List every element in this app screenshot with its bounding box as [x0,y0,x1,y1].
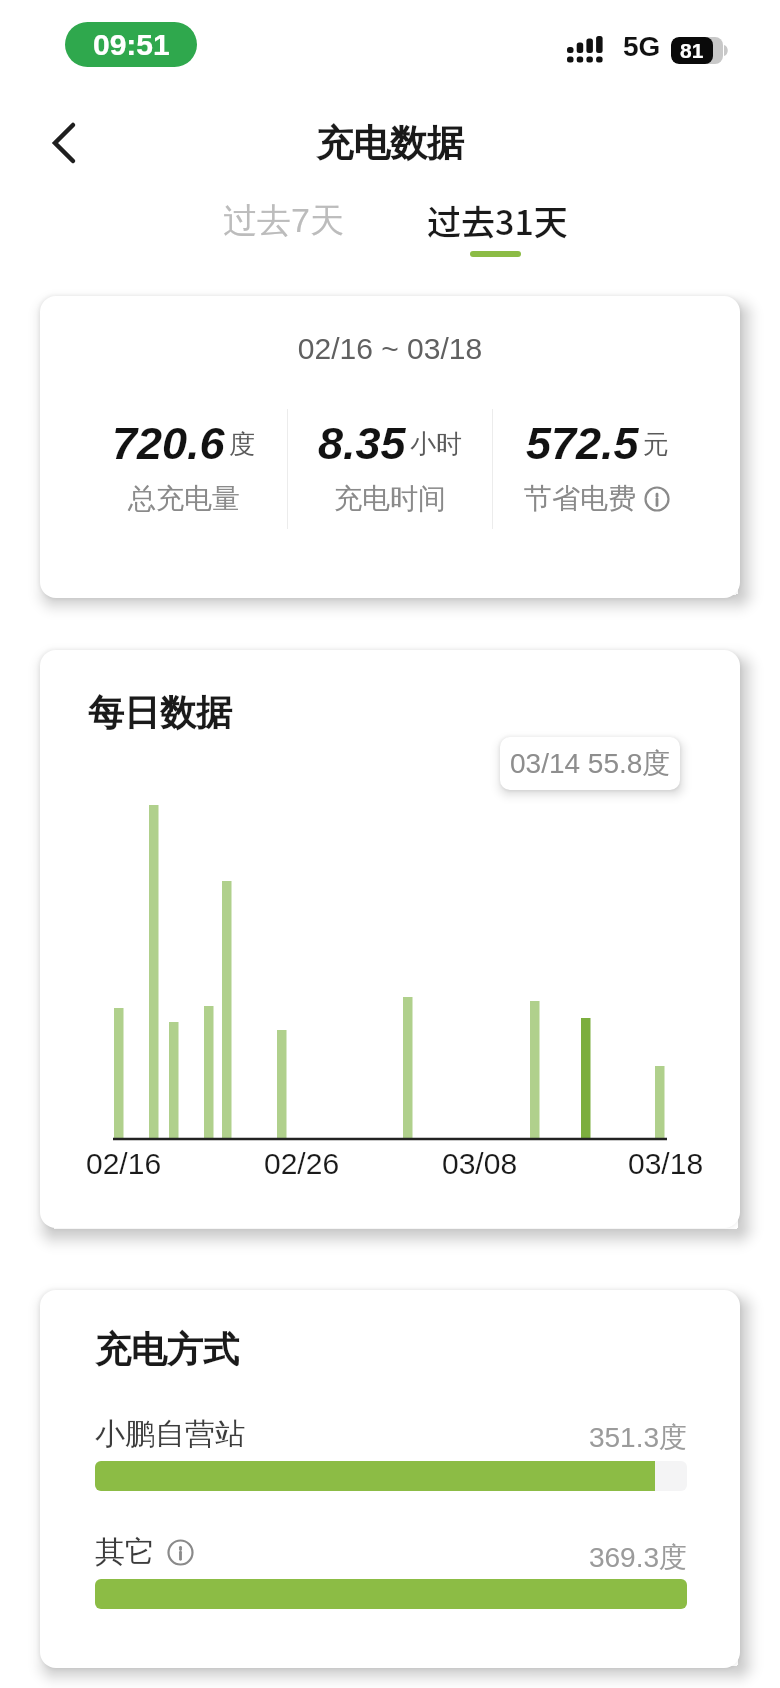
button[interactable]: 09:51 [65,22,197,67]
staticText: 元 [643,428,669,461]
staticText: 02/16 [86,1147,162,1181]
staticText: 5G [623,31,661,62]
staticText: 720.6 [112,418,225,468]
staticText: 8.35 [318,418,406,468]
button[interactable]: 过去31天 [425,196,569,242]
staticText: 81 [680,39,704,62]
staticText: 总充电量 [128,481,240,516]
staticText: 每日数据 [88,690,232,735]
staticText: 03/14 55.8度 [510,746,671,781]
staticText: 充电数据 [316,120,464,167]
staticText: 09:51 [93,28,170,62]
staticText: 度 [229,428,255,461]
staticText: 充电方式 [95,1327,239,1372]
staticText: 节省电费 [524,481,636,516]
staticText: 小时 [410,428,462,461]
button[interactable] [40,115,88,171]
staticText: 03/18 [628,1147,704,1181]
staticText: 02/16 ~ 03/18 [40,332,740,366]
staticText: 369.3度 [40,1540,687,1575]
staticText: 02/26 [264,1147,340,1181]
staticText: 过去31天 [427,196,568,242]
staticText: 过去7天 [223,199,344,242]
staticText: 其它 [95,1533,155,1571]
staticText: 03/08 [442,1147,518,1181]
staticText: 351.3度 [40,1420,687,1455]
staticText: 小鹏自营站 [95,1415,245,1453]
button[interactable]: 过去7天 [213,198,353,242]
staticText: 572.5 [526,418,639,468]
staticText: 充电时间 [334,481,446,516]
